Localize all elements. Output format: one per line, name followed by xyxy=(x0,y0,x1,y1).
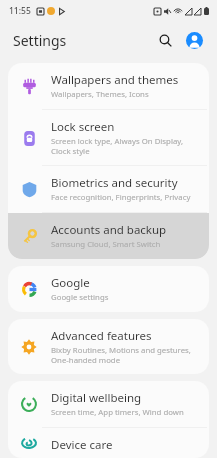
button[interactable]: Wallpapers and themes xyxy=(8,63,209,109)
staticText: Samsung Cloud, Smart Switch xyxy=(51,239,161,250)
staticText: Google settings xyxy=(51,292,109,303)
staticText: Advanced features xyxy=(51,328,152,344)
button[interactable]: Accounts and backup xyxy=(8,213,209,259)
staticText: Face recognition, Fingerprints, Privacy xyxy=(51,192,191,203)
button[interactable]: Device care xyxy=(8,428,209,458)
button[interactable]: Search xyxy=(152,27,178,53)
staticText: Wallpapers, Themes, Icons xyxy=(51,89,149,100)
staticText: Wallpapers and themes xyxy=(51,72,179,88)
staticText: Screen lock type, Always On Display, Clo… xyxy=(51,136,199,156)
button[interactable]: Google xyxy=(8,266,209,312)
button[interactable]: Advanced features xyxy=(8,319,209,374)
staticText: Screen time, App timers, Wind down xyxy=(51,407,184,418)
staticText: Accounts and backup xyxy=(51,222,167,238)
staticText: Google xyxy=(51,275,90,291)
button[interactable]: Biometrics and security xyxy=(8,166,209,212)
staticText: Bixby Routines, Motions and gestures, On… xyxy=(51,345,199,365)
staticText: 11:55 xyxy=(9,5,31,17)
staticText: Lock screen xyxy=(51,119,115,135)
staticText: Digital wellbeing xyxy=(51,390,142,406)
button[interactable]: Lock screen xyxy=(8,110,209,165)
button[interactable]: Digital wellbeing xyxy=(8,381,209,427)
staticText: Biometrics and security xyxy=(51,175,178,191)
staticText: Device care xyxy=(51,437,113,449)
staticText: Settings xyxy=(13,31,67,50)
button[interactable]: Account xyxy=(181,27,207,53)
